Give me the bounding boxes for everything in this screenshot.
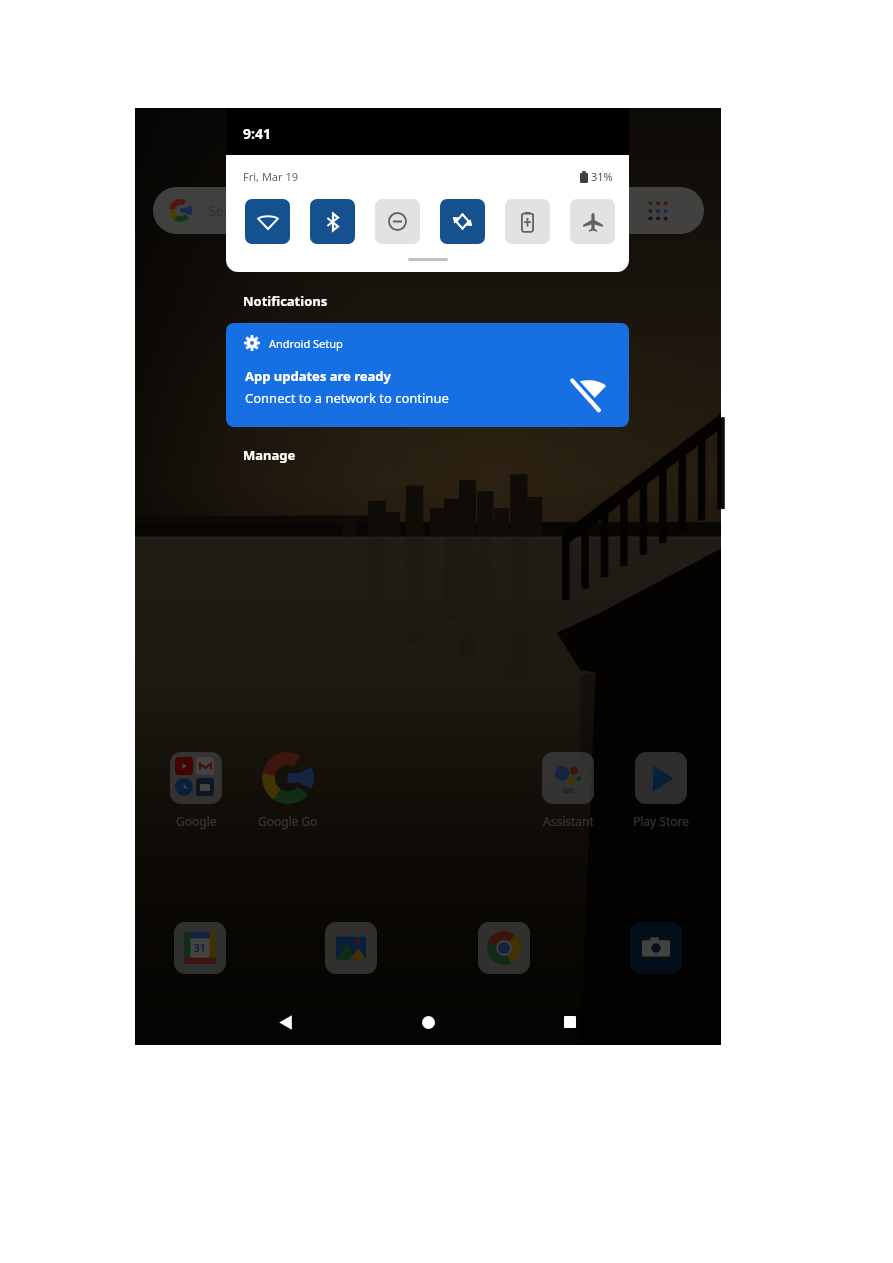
button[interactable]: GO	[527, 752, 609, 829]
button[interactable]: All apps	[648, 201, 668, 221]
button[interactable]: Chrome	[478, 922, 530, 974]
button[interactable]: Airplane mode	[570, 199, 615, 244]
staticText: Notifications	[243, 292, 328, 310]
staticText: GO	[563, 786, 574, 796]
button[interactable]: Do not disturb	[375, 199, 420, 244]
button[interactable]: Home	[412, 1006, 444, 1038]
staticText: Google	[176, 813, 217, 829]
button[interactable]: Photos	[325, 922, 377, 974]
staticText: Google Go	[258, 813, 318, 829]
button[interactable]: Play Store	[620, 752, 702, 829]
staticText: 9:41	[243, 124, 271, 143]
button[interactable]: Google Go	[247, 752, 329, 829]
button[interactable]: Wi-Fi	[245, 199, 290, 244]
button[interactable]: Collapse quick settings	[392, 254, 464, 270]
staticText: Assistant	[543, 813, 594, 829]
staticText: Connect to a network to continue	[245, 389, 449, 407]
staticText: Play Store	[633, 813, 689, 829]
button[interactable]: Google	[155, 752, 237, 829]
button[interactable]: Bluetooth	[310, 199, 355, 244]
staticText: Android Setup	[269, 336, 343, 351]
button[interactable]: Calendar	[174, 922, 226, 974]
button[interactable]: Battery saver	[505, 199, 550, 244]
button[interactable]: Auto-rotate	[440, 199, 485, 244]
button[interactable]: Back	[269, 1006, 301, 1038]
staticText: App updates are ready	[245, 367, 392, 385]
staticText: Manage	[243, 446, 296, 464]
button[interactable]: Android Setup	[226, 323, 629, 427]
staticText: Search	[208, 201, 253, 220]
button[interactable]: Recent apps	[554, 1006, 586, 1038]
button[interactable]: Camera	[630, 922, 682, 974]
button[interactable]: Manage	[243, 442, 296, 468]
staticText: Fri, Mar 19	[243, 169, 299, 184]
staticText: 31	[194, 941, 206, 955]
button[interactable]: Search	[153, 187, 704, 234]
staticText: 31%	[591, 169, 613, 184]
